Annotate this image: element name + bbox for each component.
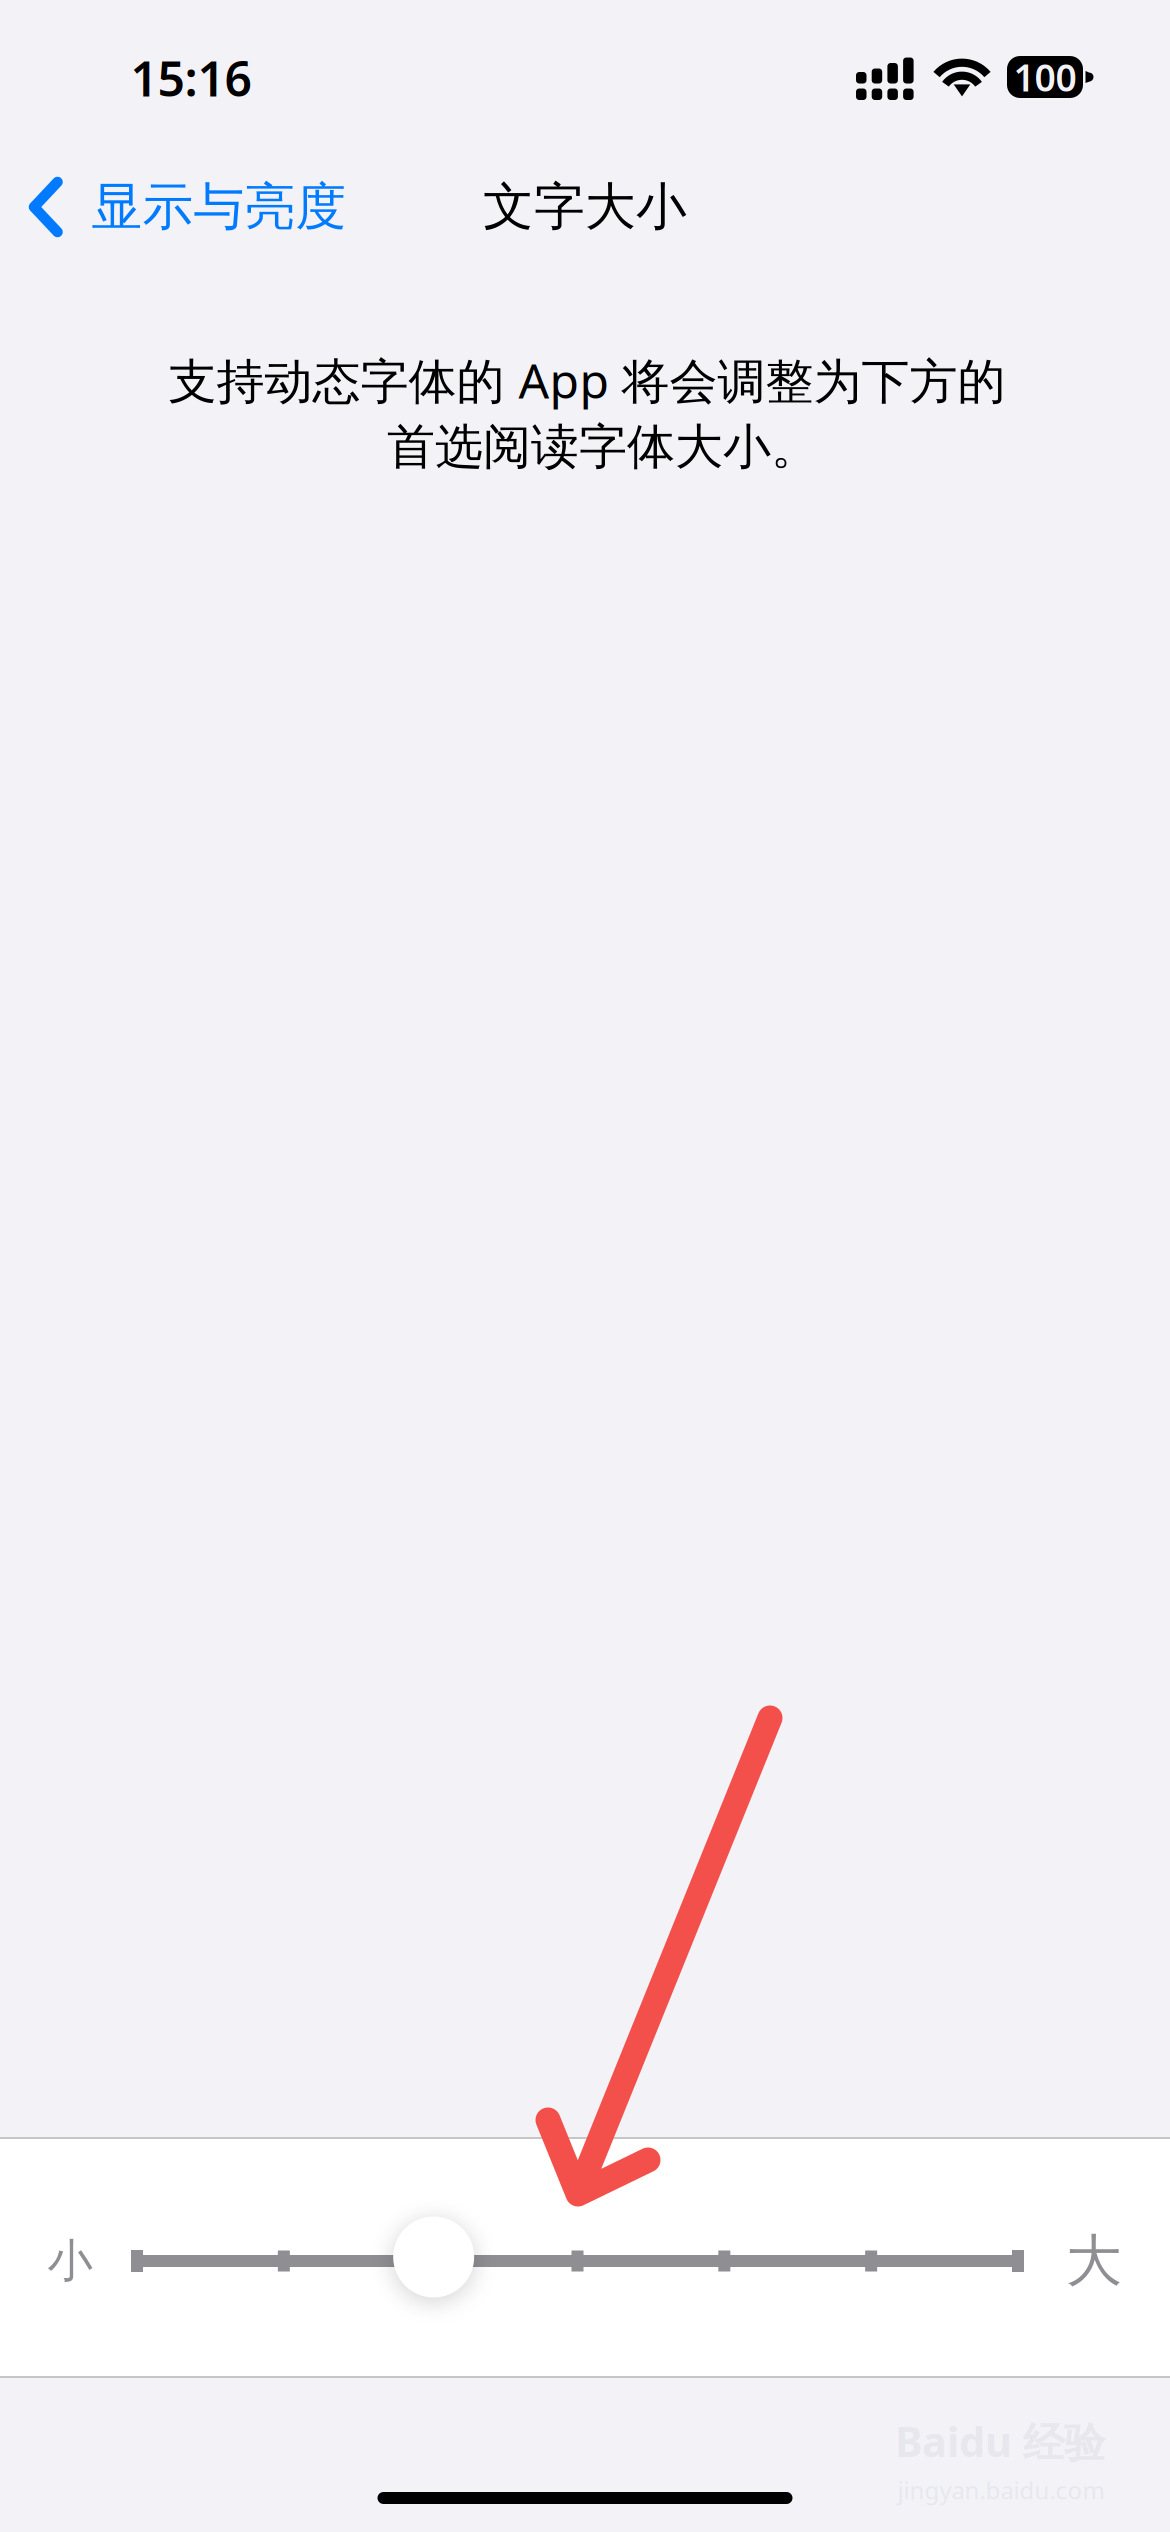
staticText: 100: [1013, 52, 1076, 102]
button[interactable]: 文字大小: [0, 2138, 1170, 2377]
staticText: 支持动态字体的 App 将会调整为下方的: [168, 348, 1005, 412]
staticText: Baidu 经验: [895, 2413, 1105, 2468]
button[interactable]: 显示与亮度: [0, 159, 370, 255]
staticText: 文字大小: [483, 176, 687, 238]
staticText: 显示与亮度: [91, 176, 346, 238]
staticText: jingyan.baidu.com: [897, 2474, 1104, 2506]
staticText: 大: [1066, 2227, 1122, 2295]
staticText: 15:16: [130, 46, 251, 110]
staticText: 小: [47, 2233, 92, 2289]
staticText: 首选阅读字体大小。: [387, 417, 819, 476]
